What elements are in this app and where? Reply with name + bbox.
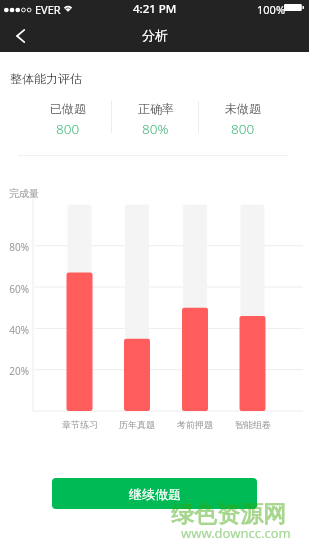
staticText: 已做题 xyxy=(50,101,86,116)
button[interactable]: 未做题 xyxy=(199,100,286,136)
staticText: 章节练习 xyxy=(52,419,108,430)
staticText: EVER xyxy=(35,2,61,17)
staticText: 60% xyxy=(4,282,29,296)
staticText: 800 xyxy=(56,120,80,136)
staticText: 历年真题 xyxy=(109,419,165,430)
button[interactable]: 已做题 xyxy=(24,100,112,136)
staticText: 100% xyxy=(257,2,286,17)
staticText: 800 xyxy=(231,120,255,136)
button[interactable]: 正确率 xyxy=(112,100,199,136)
staticText: 分析 xyxy=(142,27,168,43)
staticText: 绿色资源网 xyxy=(171,500,286,529)
staticText: 40% xyxy=(4,323,29,337)
staticText: www.downcc.com xyxy=(181,524,291,542)
button[interactable]: Back xyxy=(0,20,42,52)
button[interactable]: 继续做题 xyxy=(52,478,257,509)
staticText: 20% xyxy=(4,364,29,378)
staticText: 考前押题 xyxy=(167,419,223,430)
staticText: 80% xyxy=(142,120,169,136)
staticText: 80% xyxy=(4,240,29,254)
staticText: 整体能力评估 xyxy=(10,71,82,86)
staticText: 智能组卷 xyxy=(225,419,281,430)
staticText: 未做题 xyxy=(225,101,261,116)
staticText: 完成量 xyxy=(9,187,39,200)
staticText: 正确率 xyxy=(138,101,174,116)
staticText: 继续做题 xyxy=(129,486,181,502)
staticText: 4:21 PM xyxy=(133,1,177,17)
